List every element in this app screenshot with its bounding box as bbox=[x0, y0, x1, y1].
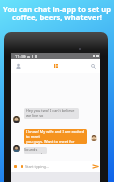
button[interactable]: Send bbox=[92, 164, 99, 169]
staticText: I know! My wife and I are excited to mee… bbox=[26, 129, 85, 144]
button[interactable]: Camera bbox=[14, 165, 17, 168]
button[interactable]: Hey you two! I can't believe we live so … bbox=[24, 108, 79, 119]
staticText: Hey you two! I can't believe we live so … bbox=[26, 108, 77, 119]
staticText: Sounds awesome! bbox=[24, 147, 47, 154]
button[interactable]: Attach bbox=[21, 165, 23, 168]
button[interactable]: Sounds awesome! bbox=[24, 147, 47, 154]
button[interactable]: Search bbox=[86, 59, 100, 73]
staticText: Start typing... bbox=[25, 164, 49, 169]
button[interactable]: Profile bbox=[11, 59, 25, 73]
staticText: 11:30 bbox=[15, 54, 26, 59]
staticText: You can chat in-app to set up coffee, be… bbox=[0, 4, 114, 22]
button[interactable]: I know! My wife and I are excited to mee… bbox=[24, 129, 87, 144]
button[interactable]: Home bbox=[51, 61, 61, 71]
